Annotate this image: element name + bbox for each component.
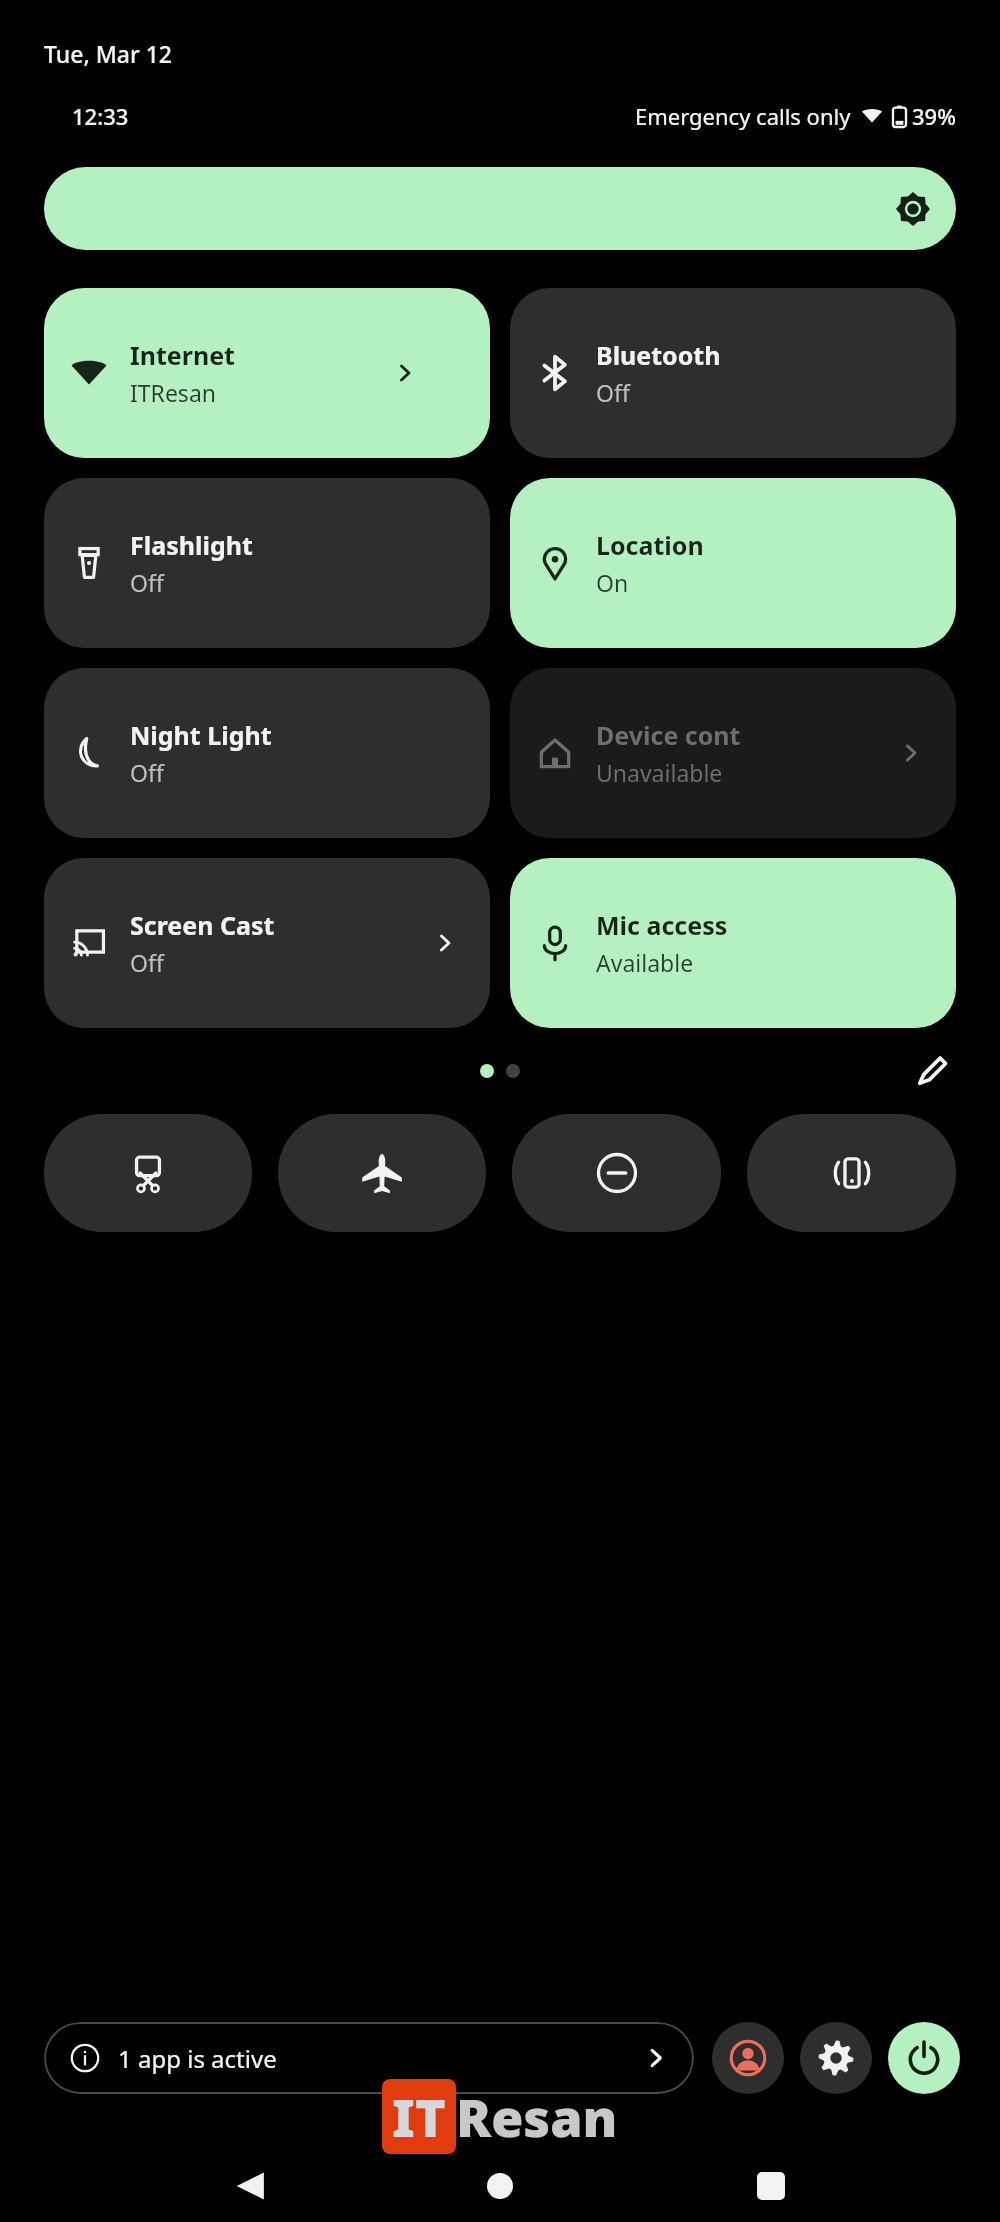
staticText: Available [596, 947, 694, 978]
button[interactable]: Bluetooth [510, 288, 956, 458]
staticText: 12:33 [72, 101, 129, 131]
staticText: Flashlight [130, 528, 253, 562]
staticText: On [596, 567, 629, 598]
button[interactable]: Internet [44, 288, 490, 458]
staticText: Unavailable [596, 757, 723, 788]
staticText: 1 app is active [118, 2042, 277, 2075]
staticText: Internet [130, 338, 235, 372]
button[interactable]: Power [888, 2022, 960, 2094]
button[interactable]: Settings [800, 2022, 872, 2094]
staticText: Bluetooth [596, 338, 721, 372]
staticText: Off [596, 377, 630, 408]
button[interactable]: Vibrate [747, 1114, 956, 1232]
staticText: Night Light [130, 718, 272, 752]
button[interactable]: Location [510, 478, 956, 648]
button[interactable]: Night Light [44, 668, 490, 838]
button[interactable]: Edit tiles [908, 1047, 956, 1095]
staticText: Off [130, 947, 164, 978]
button[interactable]: Do not disturb [512, 1114, 721, 1232]
staticText: Emergency calls only [635, 101, 851, 131]
button[interactable]: 1 app is active [44, 2022, 694, 2094]
button[interactable]: Screen Cast [44, 858, 490, 1028]
staticText: Off [130, 757, 164, 788]
staticText: Off [130, 567, 164, 598]
staticText: Screen Cast [130, 908, 275, 942]
staticText: ITResan [130, 377, 216, 408]
staticText: 39% [912, 101, 956, 131]
staticText: Tue, Mar 12 [44, 38, 172, 69]
staticText: IT [392, 2081, 446, 2152]
button[interactable]: Device cont [510, 668, 956, 838]
button[interactable]: Screenshot [44, 1114, 252, 1232]
button[interactable]: Account [712, 2022, 784, 2094]
staticText: Device cont [596, 718, 741, 752]
button[interactable]: Airplane mode [278, 1114, 486, 1232]
staticText: Location [596, 528, 704, 562]
button[interactable]: Flashlight [44, 478, 490, 648]
staticText: Resan [456, 2081, 618, 2152]
button[interactable]: Mic access [510, 858, 956, 1028]
button[interactable]: Brightness [44, 167, 956, 250]
staticText: Mic access [596, 908, 728, 942]
